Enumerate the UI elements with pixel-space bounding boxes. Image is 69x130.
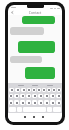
- button[interactable]: Key: [9, 94, 13, 98]
- button[interactable]: Home: [29, 113, 38, 122]
- button[interactable]: Key: [42, 88, 46, 92]
- button[interactable]: Key: [38, 94, 43, 98]
- button[interactable]: [10, 27, 44, 35]
- button[interactable]: Enter: [53, 107, 61, 112]
- button[interactable]: Comma: [17, 107, 22, 112]
- button[interactable]: Key: [38, 100, 43, 105]
- button[interactable]: [18, 41, 55, 53]
- button[interactable]: Key: [50, 94, 55, 98]
- button[interactable]: Recents: [38, 113, 47, 122]
- button[interactable]: Symbols: [9, 107, 16, 112]
- button[interactable]: Key: [15, 88, 20, 92]
- button[interactable]: Key: [20, 100, 25, 105]
- button[interactable]: Key: [50, 100, 55, 105]
- button[interactable]: Key: [27, 88, 31, 92]
- button[interactable]: Key: [20, 94, 25, 98]
- button[interactable]: Key: [26, 94, 31, 98]
- button[interactable]: Key: [9, 100, 13, 105]
- button[interactable]: Key: [32, 94, 37, 98]
- button[interactable]: Key: [44, 94, 49, 98]
- button[interactable]: Key: [44, 100, 49, 105]
- button[interactable]: Key: [32, 88, 36, 92]
- button[interactable]: Key: [9, 88, 14, 92]
- button[interactable]: Key: [14, 94, 19, 98]
- button[interactable]: Key: [14, 100, 19, 105]
- button[interactable]: Key: [57, 88, 61, 92]
- button[interactable]: Key: [32, 100, 37, 105]
- staticText: Contact: [8, 10, 62, 15]
- button[interactable]: Key: [21, 88, 26, 92]
- button[interactable]: [10, 56, 42, 63]
- button[interactable]: [25, 67, 55, 79]
- button[interactable]: Back: [20, 113, 29, 122]
- button[interactable]: Key: [56, 100, 61, 105]
- button[interactable]: Period: [47, 107, 52, 112]
- button[interactable]: Key: [56, 94, 61, 98]
- button[interactable]: Back: [9, 9, 15, 15]
- button[interactable]: Key: [47, 88, 51, 92]
- button[interactable]: Key: [37, 88, 41, 92]
- button[interactable]: Key: [52, 88, 56, 92]
- button[interactable]: [22, 16, 55, 24]
- button[interactable]: Key: [26, 100, 31, 105]
